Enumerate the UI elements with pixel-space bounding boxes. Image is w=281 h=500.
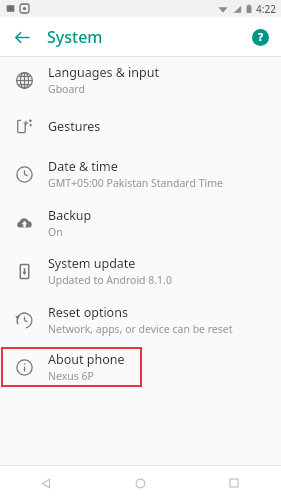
- button[interactable]: Help: [245, 22, 275, 52]
- button[interactable]: Backup: [0, 199, 281, 247]
- button[interactable]: Recent apps: [187, 466, 281, 500]
- button[interactable]: Home: [93, 466, 187, 500]
- staticText: ?: [258, 29, 264, 44]
- staticText: Nexus 6P: [48, 369, 94, 383]
- button[interactable]: Reset options: [0, 295, 281, 345]
- button[interactable]: Back: [0, 466, 93, 500]
- button[interactable]: System update: [0, 247, 281, 295]
- button[interactable]: Languages & input: [0, 57, 281, 103]
- staticText: About phone: [48, 351, 125, 368]
- staticText: GMT+05:00 Pakistan Standard Time: [48, 176, 223, 190]
- staticText: Gboard: [48, 82, 85, 96]
- button[interactable]: Back: [4, 19, 40, 55]
- button[interactable]: Date & time: [0, 149, 281, 199]
- staticText: On: [48, 225, 63, 239]
- staticText: System: [47, 26, 103, 48]
- staticText: 4:22: [256, 2, 276, 16]
- staticText: Network, apps, or device can be reset: [48, 322, 233, 336]
- staticText: Updated to Android 8.1.0: [48, 273, 172, 287]
- button[interactable]: Gestures: [0, 103, 281, 149]
- staticText: Backup: [48, 207, 92, 224]
- button[interactable]: About phone: [0, 345, 281, 389]
- staticText: Reset options: [48, 304, 128, 321]
- staticText: Date & time: [48, 158, 118, 175]
- staticText: Languages & input: [48, 64, 159, 81]
- staticText: Gestures: [48, 118, 101, 135]
- staticText: System update: [48, 255, 136, 272]
